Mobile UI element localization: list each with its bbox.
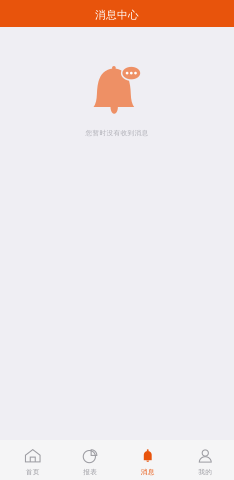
button[interactable]: 首页 — [4, 440, 61, 480]
staticText: 首页 — [26, 468, 40, 476]
button[interactable]: 报表 — [61, 440, 119, 480]
button[interactable]: 我的 — [176, 440, 234, 480]
staticText: 消息 — [141, 468, 155, 476]
staticText: 我的 — [198, 468, 212, 476]
staticText: 报表 — [83, 468, 97, 476]
staticText: 消息中心 — [95, 8, 139, 21]
staticText: 您暂时没有收到消息 — [85, 129, 148, 137]
button[interactable]: 消息 — [119, 440, 176, 480]
